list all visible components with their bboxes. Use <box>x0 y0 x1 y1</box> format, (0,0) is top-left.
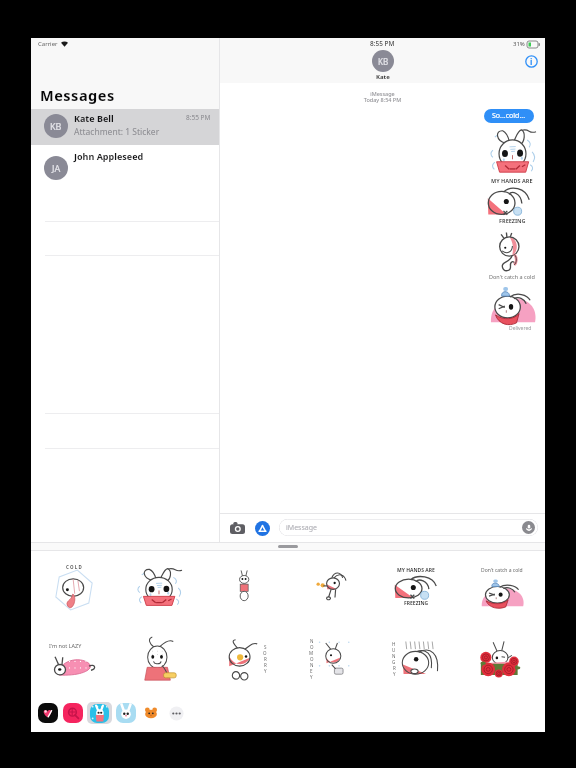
button[interactable]: Sticker 3 <box>201 551 287 623</box>
button[interactable]: Details <box>525 55 538 68</box>
button[interactable]: Bunny sticker pack <box>116 703 136 723</box>
button[interactable]: Sticker 7 <box>31 623 116 695</box>
staticText: O <box>310 656 314 662</box>
staticText: S <box>264 644 267 650</box>
staticText: Y <box>393 671 396 677</box>
staticText: Carrier <box>38 40 58 48</box>
button[interactable]: App Store <box>253 519 271 537</box>
button[interactable]: Sticker 9 <box>201 623 287 695</box>
staticText: FREEZING <box>404 600 429 607</box>
button[interactable]: Sticker 1 <box>31 551 116 623</box>
button[interactable]: iMessage <box>279 519 538 536</box>
button[interactable]: Sticker 8 <box>116 623 201 695</box>
staticText: KB <box>50 120 62 132</box>
staticText: Messages <box>40 85 115 105</box>
staticText: Attachment: 1 Sticker <box>74 126 160 138</box>
staticText: Y <box>264 668 267 674</box>
staticText: O <box>263 650 267 656</box>
staticText: U <box>392 647 396 653</box>
staticText: O <box>310 644 314 650</box>
staticText: E <box>310 668 313 674</box>
button[interactable]: Bear emoji app <box>141 703 161 723</box>
button[interactable]: Sticker: freezing bunny <box>488 128 537 174</box>
staticText: MY HANDS ARE <box>397 567 435 574</box>
staticText: R <box>264 656 267 662</box>
button[interactable]: Sticker: don't catch a cold <box>488 281 537 323</box>
button[interactable]: Sticker: curled bunny <box>490 234 532 272</box>
button[interactable]: Sticker 11 <box>373 623 459 695</box>
staticText: M <box>309 650 314 656</box>
staticText: John Appleseed <box>74 150 144 162</box>
staticText: So...cold... <box>492 111 526 121</box>
button[interactable]: Search app <box>63 703 83 723</box>
button[interactable]: Sticker 4 <box>287 551 373 623</box>
staticText: N <box>310 662 314 668</box>
staticText: JA <box>52 162 61 174</box>
button[interactable]: Sticker: my hands are freezing <box>486 185 532 217</box>
other: Record audio <box>522 521 535 534</box>
staticText: Kate <box>376 73 390 81</box>
button[interactable]: Hearts app <box>38 703 58 723</box>
button[interactable]: Sticker 6 <box>459 551 545 623</box>
staticText: C O L D <box>66 564 82 570</box>
button[interactable]: JA <box>31 145 219 183</box>
staticText: 8:55 PM <box>186 113 211 122</box>
button[interactable]: Sticker 10 <box>287 623 373 695</box>
staticText: i <box>530 56 533 67</box>
button[interactable]: Sticker 2 <box>116 551 201 623</box>
button[interactable]: Sticker 5 <box>373 551 459 623</box>
staticText: iMessage Today 8:54 PM <box>220 90 545 104</box>
staticText: FREEZING <box>499 217 526 224</box>
staticText: 8:55 PM <box>370 39 395 48</box>
staticText: G <box>392 659 396 665</box>
staticText: R <box>393 665 396 671</box>
staticText: H <box>392 641 396 647</box>
staticText: N <box>392 653 396 659</box>
button[interactable]: Camera <box>228 519 246 537</box>
staticText: Don't catch a cold <box>481 567 523 574</box>
staticText: iMessage <box>286 523 317 533</box>
staticText: KB <box>378 56 389 67</box>
staticText: N <box>310 638 314 644</box>
button[interactable]: Sticker 12 <box>459 623 545 695</box>
button[interactable]: So...cold... <box>484 109 534 123</box>
staticText: Delivered <box>509 325 532 332</box>
staticText: Kate Bell <box>74 112 114 124</box>
button[interactable]: Cold bunny sticker pack <box>87 702 112 724</box>
staticText: R <box>264 662 267 668</box>
staticText: MY HANDS ARE <box>491 177 533 184</box>
button[interactable]: KB <box>31 109 219 145</box>
staticText: I'm not LAZY <box>49 642 82 649</box>
button[interactable]: More apps <box>166 703 186 723</box>
staticText: Y <box>310 674 313 680</box>
staticText: 31% <box>513 40 525 48</box>
staticText: Don't catch a cold <box>489 273 535 280</box>
